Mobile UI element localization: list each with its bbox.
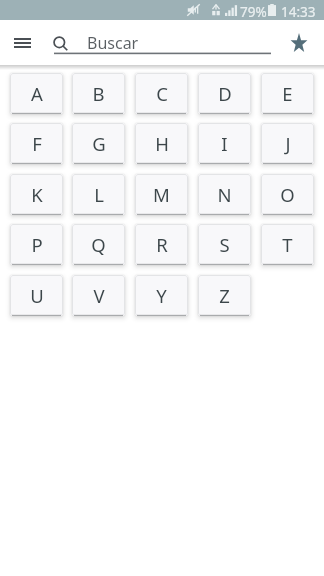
- staticText: 14:33: [281, 3, 316, 21]
- staticText: J: [285, 131, 291, 156]
- button[interactable]: Favorites: [285, 28, 313, 56]
- button[interactable]: A: [10, 73, 63, 114]
- staticText: F: [32, 131, 42, 156]
- button[interactable]: G: [72, 123, 125, 164]
- button[interactable]: Y: [135, 275, 188, 316]
- button[interactable]: U: [10, 275, 63, 316]
- button[interactable]: S: [198, 224, 251, 265]
- button[interactable]: T: [261, 224, 314, 265]
- staticText: H: [155, 131, 169, 156]
- staticText: U: [30, 283, 44, 308]
- staticText: G: [92, 131, 106, 156]
- staticText: N: [217, 182, 232, 207]
- button[interactable]: M: [135, 174, 188, 215]
- staticText: O: [280, 182, 295, 207]
- staticText: P: [31, 232, 43, 257]
- staticText: D: [218, 81, 232, 106]
- staticText: Y: [156, 283, 167, 308]
- staticText: Buscar: [87, 32, 139, 54]
- button[interactable]: V: [72, 275, 125, 316]
- button[interactable]: C: [135, 73, 188, 114]
- staticText: K: [31, 182, 43, 207]
- button[interactable]: Menu: [6, 27, 38, 59]
- other: Search: [48, 31, 72, 55]
- button[interactable]: O: [261, 174, 314, 215]
- staticText: S: [219, 232, 230, 257]
- button[interactable]: Q: [72, 224, 125, 265]
- button[interactable]: D: [198, 73, 251, 114]
- button[interactable]: F: [10, 123, 63, 164]
- staticText: 79%: [240, 3, 267, 21]
- staticText: R: [156, 232, 168, 257]
- button[interactable]: I: [198, 123, 251, 164]
- staticText: Z: [219, 283, 230, 308]
- button[interactable]: Buscar: [53, 28, 270, 58]
- button[interactable]: B: [72, 73, 125, 114]
- staticText: M: [153, 182, 170, 207]
- button[interactable]: Z: [198, 275, 251, 316]
- button[interactable]: R: [135, 224, 188, 265]
- staticText: I: [221, 131, 228, 156]
- button[interactable]: L: [72, 174, 125, 215]
- staticText: A: [31, 81, 43, 106]
- button[interactable]: J: [261, 123, 314, 164]
- staticText: V: [93, 283, 105, 308]
- button[interactable]: K: [10, 174, 63, 215]
- staticText: E: [282, 81, 293, 106]
- button[interactable]: H: [135, 123, 188, 164]
- staticText: Q: [91, 232, 106, 257]
- staticText: L: [94, 182, 104, 207]
- button[interactable]: E: [261, 73, 314, 114]
- staticText: T: [282, 232, 293, 257]
- staticText: B: [92, 81, 105, 106]
- button[interactable]: N: [198, 174, 251, 215]
- button[interactable]: P: [10, 224, 63, 265]
- staticText: C: [156, 81, 168, 106]
